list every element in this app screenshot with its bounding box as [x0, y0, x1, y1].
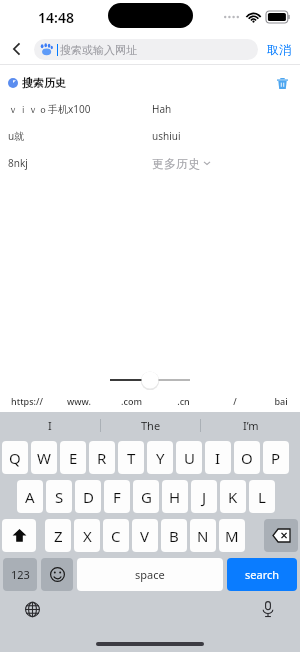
- button[interactable]: 取消: [258, 34, 300, 64]
- button[interactable]: P: [263, 441, 289, 474]
- staticText: B: [169, 526, 179, 546]
- button[interactable]: www.: [53, 390, 105, 412]
- button[interactable]: J: [191, 480, 217, 513]
- staticText: J: [202, 487, 207, 507]
- button[interactable]: Clear history: [273, 74, 291, 92]
- button[interactable]: bai: [261, 390, 300, 412]
- button[interactable]: .com: [105, 390, 157, 412]
- staticText: 123: [11, 567, 30, 582]
- button[interactable]: I: [205, 441, 231, 474]
- staticText: E: [69, 448, 78, 468]
- staticText: 更多历史: [152, 156, 200, 171]
- staticText: V: [140, 526, 150, 546]
- staticText: 14:48: [38, 8, 74, 27]
- button[interactable]: Voice input: [257, 598, 279, 620]
- staticText: F: [113, 487, 121, 507]
- button[interactable]: Hah: [152, 102, 300, 116]
- button[interactable]: ushiui: [152, 129, 300, 143]
- button[interactable]: T: [118, 441, 144, 474]
- button[interactable]: M: [219, 519, 245, 552]
- staticText: www.: [67, 395, 91, 407]
- staticText: 取消: [267, 42, 291, 57]
- staticText: search: [245, 567, 280, 582]
- staticText: K: [228, 487, 238, 507]
- staticText: I: [48, 418, 52, 433]
- staticText: P: [271, 448, 281, 468]
- button[interactable]: 搜索或输入网址: [34, 39, 258, 60]
- button[interactable]: space: [77, 558, 223, 591]
- staticText: I’m: [243, 418, 259, 433]
- button[interactable]: /: [209, 390, 261, 412]
- button[interactable]: H: [162, 480, 188, 513]
- staticText: .cn: [177, 395, 190, 407]
- staticText: O: [241, 448, 253, 468]
- staticText: X: [83, 526, 92, 546]
- button[interactable]: A: [17, 480, 43, 513]
- button[interactable]: D: [75, 480, 101, 513]
- button[interactable]: The: [101, 412, 200, 439]
- staticText: 搜索或输入网址: [60, 43, 137, 57]
- button[interactable]: G: [133, 480, 159, 513]
- staticText: The: [141, 418, 161, 433]
- button[interactable]: S: [46, 480, 72, 513]
- button[interactable]: F: [104, 480, 130, 513]
- button[interactable]: .cn: [157, 390, 209, 412]
- staticText: .com: [121, 395, 142, 407]
- staticText: bai: [274, 395, 288, 407]
- button[interactable]: C: [103, 519, 129, 552]
- staticText: ｖｉｖｏ手机x100: [8, 102, 91, 116]
- button[interactable]: E: [60, 441, 86, 474]
- button[interactable]: search: [227, 558, 297, 591]
- button[interactable]: O: [234, 441, 260, 474]
- button[interactable]: Backspace: [264, 519, 298, 552]
- button[interactable]: Y: [147, 441, 173, 474]
- staticText: /: [233, 395, 237, 407]
- staticText: 8nkj: [8, 156, 28, 170]
- staticText: Z: [54, 526, 63, 546]
- button[interactable]: 8nkj: [8, 155, 152, 171]
- button[interactable]: Shift: [2, 519, 36, 552]
- staticText: space: [135, 567, 165, 582]
- button[interactable]: Back: [0, 34, 34, 64]
- staticText: I: [215, 448, 221, 468]
- button[interactable]: I: [0, 412, 100, 439]
- staticText: R: [97, 448, 107, 468]
- button[interactable]: Change keyboard language: [21, 598, 43, 620]
- button[interactable]: L: [249, 480, 275, 513]
- button[interactable]: u就: [8, 129, 152, 143]
- staticText: u就: [8, 129, 25, 143]
- button[interactable]: 更多历史: [152, 155, 300, 171]
- staticText: Q: [9, 448, 21, 468]
- staticText: Y: [156, 448, 165, 468]
- staticText: G: [141, 487, 152, 507]
- button[interactable]: I’m: [201, 412, 300, 439]
- button[interactable]: Q: [2, 441, 28, 474]
- button[interactable]: R: [89, 441, 115, 474]
- staticText: C: [111, 526, 121, 546]
- button[interactable]: Z: [45, 519, 71, 552]
- staticText: T: [127, 448, 136, 468]
- staticText: W: [37, 448, 51, 468]
- staticText: S: [55, 487, 64, 507]
- button[interactable]: K: [220, 480, 246, 513]
- button[interactable]: 123: [3, 558, 37, 591]
- staticText: A: [25, 487, 35, 507]
- button[interactable]: B: [161, 519, 187, 552]
- staticText: 搜索历史: [22, 76, 66, 90]
- staticText: Hah: [152, 102, 172, 116]
- staticText: ushiui: [152, 129, 181, 143]
- button[interactable]: ｖｉｖｏ手机x100: [8, 102, 152, 116]
- button[interactable]: U: [176, 441, 202, 474]
- staticText: N: [197, 526, 209, 546]
- button[interactable]: V: [132, 519, 158, 552]
- staticText: L: [258, 487, 266, 507]
- button[interactable]: N: [190, 519, 216, 552]
- button[interactable]: https://: [0, 390, 53, 412]
- staticText: M: [225, 526, 239, 546]
- button[interactable]: X: [74, 519, 100, 552]
- staticText: H: [169, 487, 181, 507]
- staticText: D: [83, 487, 94, 507]
- button[interactable]: Emoji: [41, 558, 73, 591]
- staticText: https://: [11, 395, 43, 407]
- button[interactable]: W: [31, 441, 57, 474]
